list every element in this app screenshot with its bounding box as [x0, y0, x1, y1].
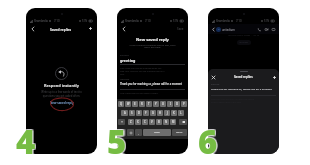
staticText: F	[145, 111, 147, 115]
staticText: 4	[17, 118, 37, 163]
staticText: 5	[106, 118, 126, 163]
button[interactable]: More options	[270, 26, 277, 33]
staticText: J	[167, 111, 168, 115]
button[interactable]: C	[142, 119, 148, 125]
staticText: R	[141, 102, 143, 106]
button[interactable]: M	[170, 119, 176, 125]
button[interactable]: X	[135, 119, 141, 125]
staticText: Write up to a few words of text to quest…	[41, 90, 82, 97]
staticText: space	[154, 131, 160, 134]
button[interactable]: Call	[256, 26, 263, 33]
button[interactable]: G	[150, 110, 156, 116]
button[interactable]: R	[139, 101, 145, 107]
staticText: Last seen within a week · +44 20	[208, 34, 279, 37]
button[interactable]: B	[156, 119, 162, 125]
button[interactable]: Back	[120, 25, 127, 32]
button[interactable]: Numbers	[118, 129, 126, 136]
button[interactable]: space	[143, 129, 171, 136]
button[interactable]: S	[129, 110, 135, 116]
staticText: Saved replies	[234, 75, 253, 79]
button[interactable]: Q	[118, 101, 124, 107]
button[interactable]: Back	[29, 25, 36, 32]
button[interactable]: Add	[87, 25, 94, 32]
staticText: 4	[16, 118, 36, 163]
staticText: 5	[108, 118, 128, 163]
staticText: O	[176, 102, 179, 106]
button[interactable]: search	[172, 129, 187, 136]
button[interactable]: Comma	[135, 129, 142, 136]
staticText: 4	[15, 119, 35, 164]
staticText: I	[170, 102, 171, 106]
staticText: 5	[107, 118, 127, 163]
staticText: Respond instantly	[44, 83, 79, 88]
button[interactable]: Y	[153, 101, 159, 107]
button[interactable]: Z	[128, 119, 134, 125]
button[interactable]: Close	[210, 74, 216, 80]
staticText: 6	[198, 118, 218, 163]
staticText: N	[165, 120, 167, 124]
button[interactable]: W	[125, 101, 131, 107]
staticText: U	[162, 102, 164, 106]
staticText: search	[176, 131, 183, 134]
staticText: Z	[130, 120, 132, 124]
staticText: 5	[107, 120, 127, 165]
button[interactable]: Add	[271, 74, 277, 80]
staticText: A	[124, 111, 126, 115]
staticText: 51%	[82, 19, 88, 23]
button[interactable]: H	[157, 110, 163, 116]
staticText: Shamlardia	[125, 19, 139, 23]
staticText: Message	[120, 78, 130, 81]
button[interactable]: T	[146, 101, 152, 107]
staticText: greeting	[120, 58, 136, 63]
button[interactable]: New saved reply	[48, 100, 76, 106]
button[interactable]: F	[143, 110, 149, 116]
staticText: H	[159, 111, 161, 115]
staticText: This saved reply will be inserted when y…	[120, 67, 165, 76]
staticText: Write a shortcut phrase and its text, th…	[117, 43, 188, 49]
button[interactable]: L	[178, 110, 184, 116]
button[interactable]: Shift	[118, 119, 125, 125]
button[interactable]: Back	[210, 26, 216, 32]
button[interactable]: A	[121, 110, 128, 116]
staticText: 4	[17, 120, 37, 165]
staticText: K	[173, 111, 175, 115]
staticText: S	[131, 111, 133, 115]
staticText: X	[137, 120, 139, 124]
staticText: 7:10	[145, 19, 151, 23]
staticText: 6	[197, 120, 217, 165]
staticText: Shamlardia	[216, 19, 230, 23]
button[interactable]: V	[149, 119, 155, 125]
button[interactable]: J	[164, 110, 170, 116]
button[interactable]: Save	[176, 26, 185, 32]
staticText: 4	[15, 118, 35, 163]
staticText: 5	[108, 120, 128, 165]
staticText: Y	[155, 102, 157, 106]
staticText: Saved replies	[50, 27, 72, 31]
staticText: Shortcut	[120, 54, 129, 57]
staticText: 4	[15, 120, 35, 165]
button[interactable]: Backspace	[179, 119, 187, 125]
staticText: 4	[16, 120, 36, 165]
button[interactable]: O	[174, 101, 180, 107]
staticText: 6	[199, 120, 219, 165]
staticText: 5	[107, 119, 127, 164]
button[interactable]: I	[167, 101, 173, 107]
staticText: Thank you for reaching us, please call f…	[120, 82, 182, 85]
button[interactable]: K	[171, 110, 177, 116]
button[interactable]: P	[181, 101, 187, 107]
staticText: 7:10	[236, 19, 242, 23]
staticText: M	[172, 120, 175, 124]
button[interactable]: Emoji	[127, 129, 134, 136]
button[interactable]: D	[136, 110, 142, 116]
staticText: D	[138, 111, 140, 115]
staticText: B	[158, 120, 160, 124]
button[interactable]: U	[160, 101, 166, 107]
staticText: P	[183, 102, 185, 106]
button[interactable]: E	[132, 101, 138, 107]
staticText: E	[134, 102, 136, 106]
button[interactable]: Video call	[263, 26, 270, 33]
staticText: C	[144, 120, 146, 124]
staticText: T	[148, 102, 150, 106]
button[interactable]: N	[163, 119, 169, 125]
